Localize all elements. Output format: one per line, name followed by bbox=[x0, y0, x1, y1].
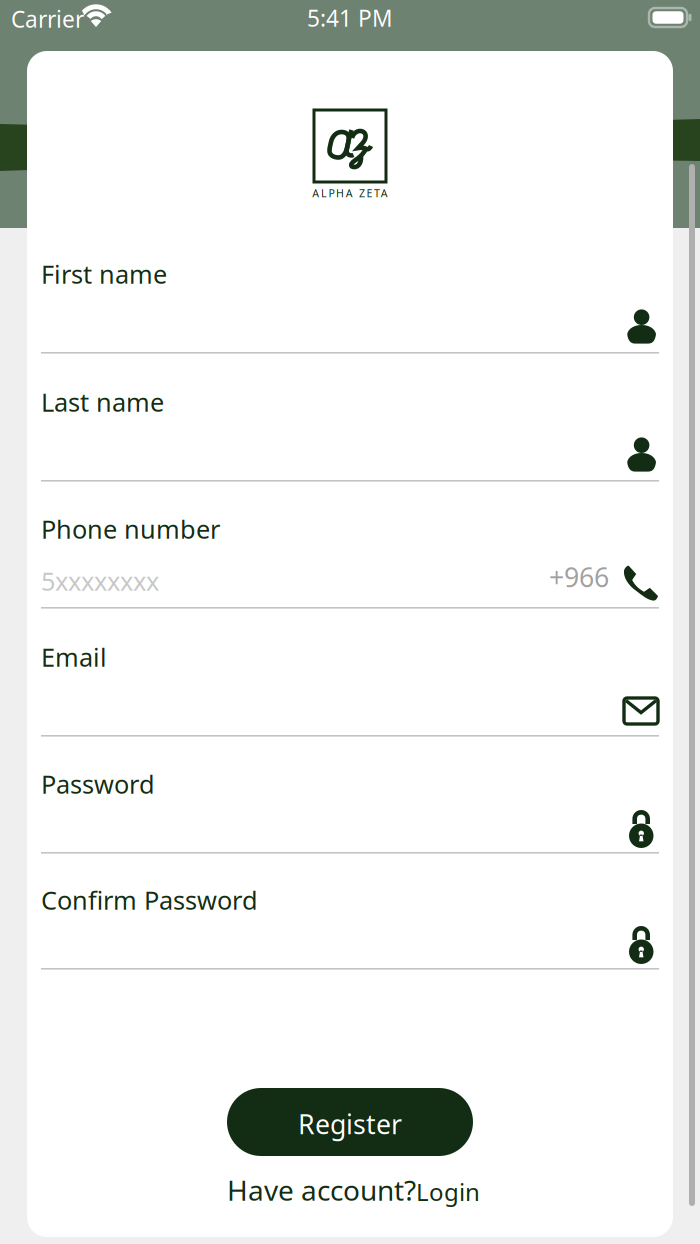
staticText: ALPHA ZETA bbox=[312, 186, 388, 200]
staticText: Confirm Password bbox=[41, 883, 258, 917]
staticText: Phone number bbox=[41, 512, 220, 546]
button[interactable]: Register bbox=[227, 1088, 473, 1156]
staticText: 5:41 PM bbox=[307, 3, 393, 33]
staticText: First name bbox=[41, 257, 167, 291]
staticText: Last name bbox=[41, 385, 164, 419]
staticText: Carrier bbox=[11, 4, 84, 34]
staticText: Login bbox=[416, 1176, 480, 1208]
staticText: Email bbox=[41, 640, 107, 674]
staticText: Password bbox=[41, 767, 155, 801]
staticText: Have account? bbox=[227, 1171, 416, 1209]
staticText: 5xxxxxxxx bbox=[41, 564, 159, 598]
staticText: +966 bbox=[549, 559, 609, 595]
button[interactable]: Have account? bbox=[227, 1174, 480, 1206]
staticText: Register bbox=[298, 1106, 402, 1142]
